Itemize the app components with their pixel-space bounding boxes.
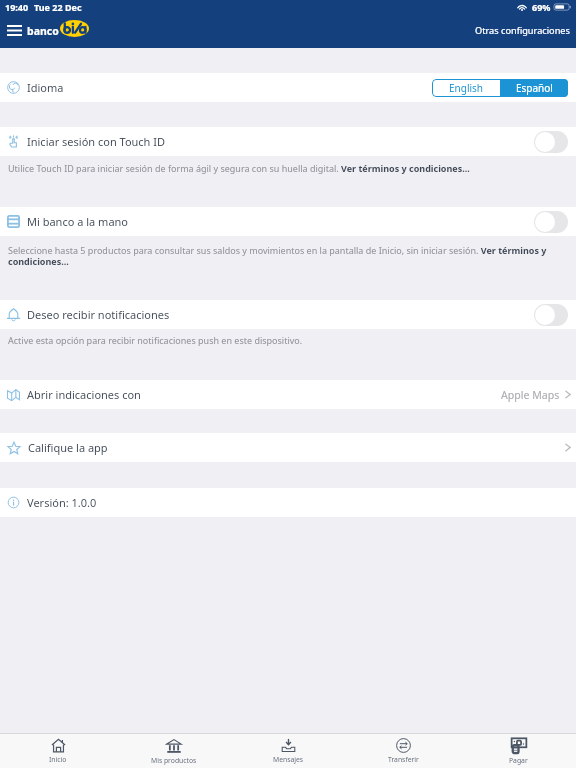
button[interactable]: Español [500, 79, 568, 97]
button[interactable]: Mis productos [116, 734, 231, 768]
staticText: Tue 22 Dec [34, 1, 82, 13]
staticText: Califique la app [28, 440, 108, 455]
button[interactable]: Califique la app [0, 433, 576, 462]
staticText: Mi banco a la mano [27, 214, 129, 229]
staticText: Transferir [388, 755, 419, 764]
staticText: Mensajes [273, 755, 304, 764]
button[interactable]: Otras configuraciones [469, 19, 576, 42]
button[interactable]: Pagar [461, 734, 576, 768]
staticText: Abrir indicaciones con [27, 387, 141, 402]
staticText: Seleccione hasta 5 productos para consul… [8, 244, 568, 268]
button[interactable]: Mi banco a la mano [0, 207, 576, 236]
staticText: Versión: 1.0.0 [27, 495, 97, 510]
staticText: Inicio [49, 755, 67, 764]
staticText: Utilice Touch ID para iniciar sesión de … [8, 162, 568, 174]
button[interactable]: Abrir indicaciones con [0, 380, 576, 409]
button[interactable]: Transferir [346, 734, 461, 768]
staticText: Active esta opción para recibir notifica… [8, 334, 568, 346]
staticText: 19:40 [5, 1, 29, 13]
button[interactable]: Activar [534, 211, 568, 233]
button[interactable]: Mensajes [231, 734, 346, 768]
staticText: Mis productos [151, 756, 197, 765]
button[interactable]: Activar [534, 131, 568, 153]
staticText: banco [27, 24, 59, 38]
staticText: Apple Maps [501, 388, 560, 402]
staticText: Idioma [27, 80, 64, 95]
button[interactable]: English [432, 79, 500, 97]
staticText: Iniciar sesión con Touch ID [27, 134, 166, 149]
button[interactable]: Deseo recibir notificaciones [0, 300, 576, 329]
button[interactable]: Inicio [0, 734, 116, 768]
staticText: English [449, 81, 484, 95]
staticText: 69% [532, 1, 551, 13]
staticText: Español [516, 81, 553, 95]
button[interactable]: Activar [534, 304, 568, 326]
staticText: Deseo recibir notificaciones [27, 307, 170, 322]
staticText: Otras configuraciones [475, 24, 570, 37]
button[interactable]: Menu [3, 20, 25, 42]
button[interactable]: Iniciar sesión con Touch ID [0, 127, 576, 156]
staticText: Pagar [509, 756, 528, 765]
